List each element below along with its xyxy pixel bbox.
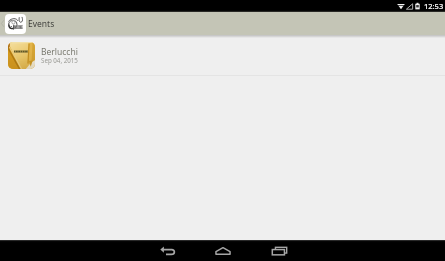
- staticText: Sep 04, 2015: [41, 56, 78, 64]
- button[interactable]: Recent apps: [251, 240, 307, 261]
- button[interactable]: Navigate up: [0, 12, 28, 35]
- staticText: 12:53: [424, 1, 444, 11]
- staticText: Events: [28, 18, 55, 30]
- staticText: Berlucchi: [41, 46, 78, 58]
- button[interactable]: Back: [139, 240, 195, 261]
- button[interactable]: Home: [195, 240, 251, 261]
- button[interactable]: Berlucchi: [0, 35, 445, 75]
